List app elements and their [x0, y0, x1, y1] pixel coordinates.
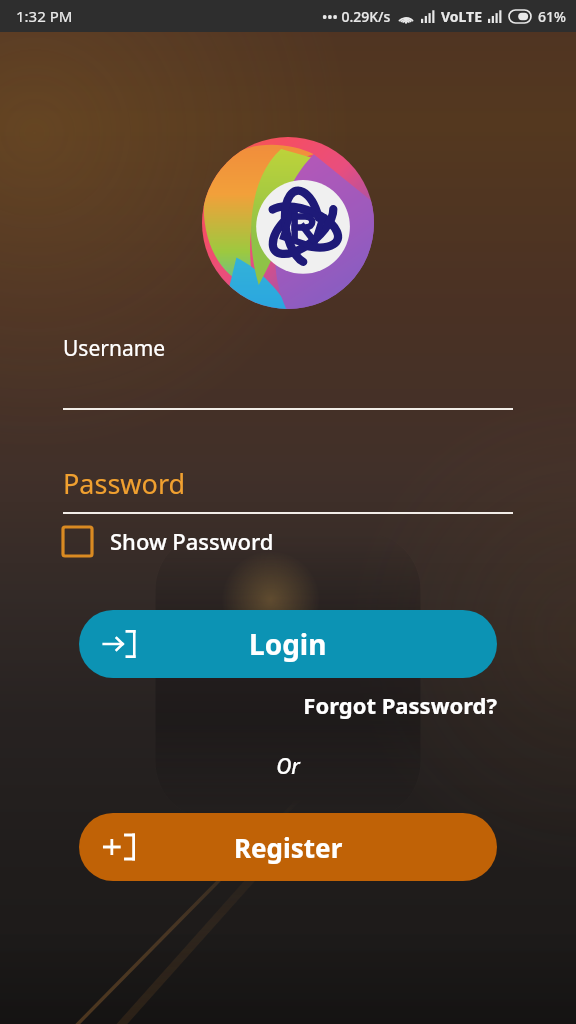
staticText: Password — [63, 465, 186, 502]
staticText: Or — [0, 752, 576, 781]
staticText: 61% — [538, 7, 566, 26]
staticText: ••• 0.29K/s — [322, 7, 391, 26]
button[interactable]: Register — [79, 813, 497, 881]
staticText: Login — [249, 625, 327, 663]
button[interactable]: Forgot Password? — [0, 690, 497, 720]
staticText: Show Password — [110, 526, 274, 556]
staticText: Register — [234, 830, 343, 865]
staticText: VoLTE — [441, 7, 483, 26]
button[interactable]: Show Password — [63, 526, 274, 556]
button[interactable]: Login — [79, 610, 497, 678]
staticText: Username — [63, 334, 166, 363]
staticText: 1:32 PM — [16, 6, 73, 26]
